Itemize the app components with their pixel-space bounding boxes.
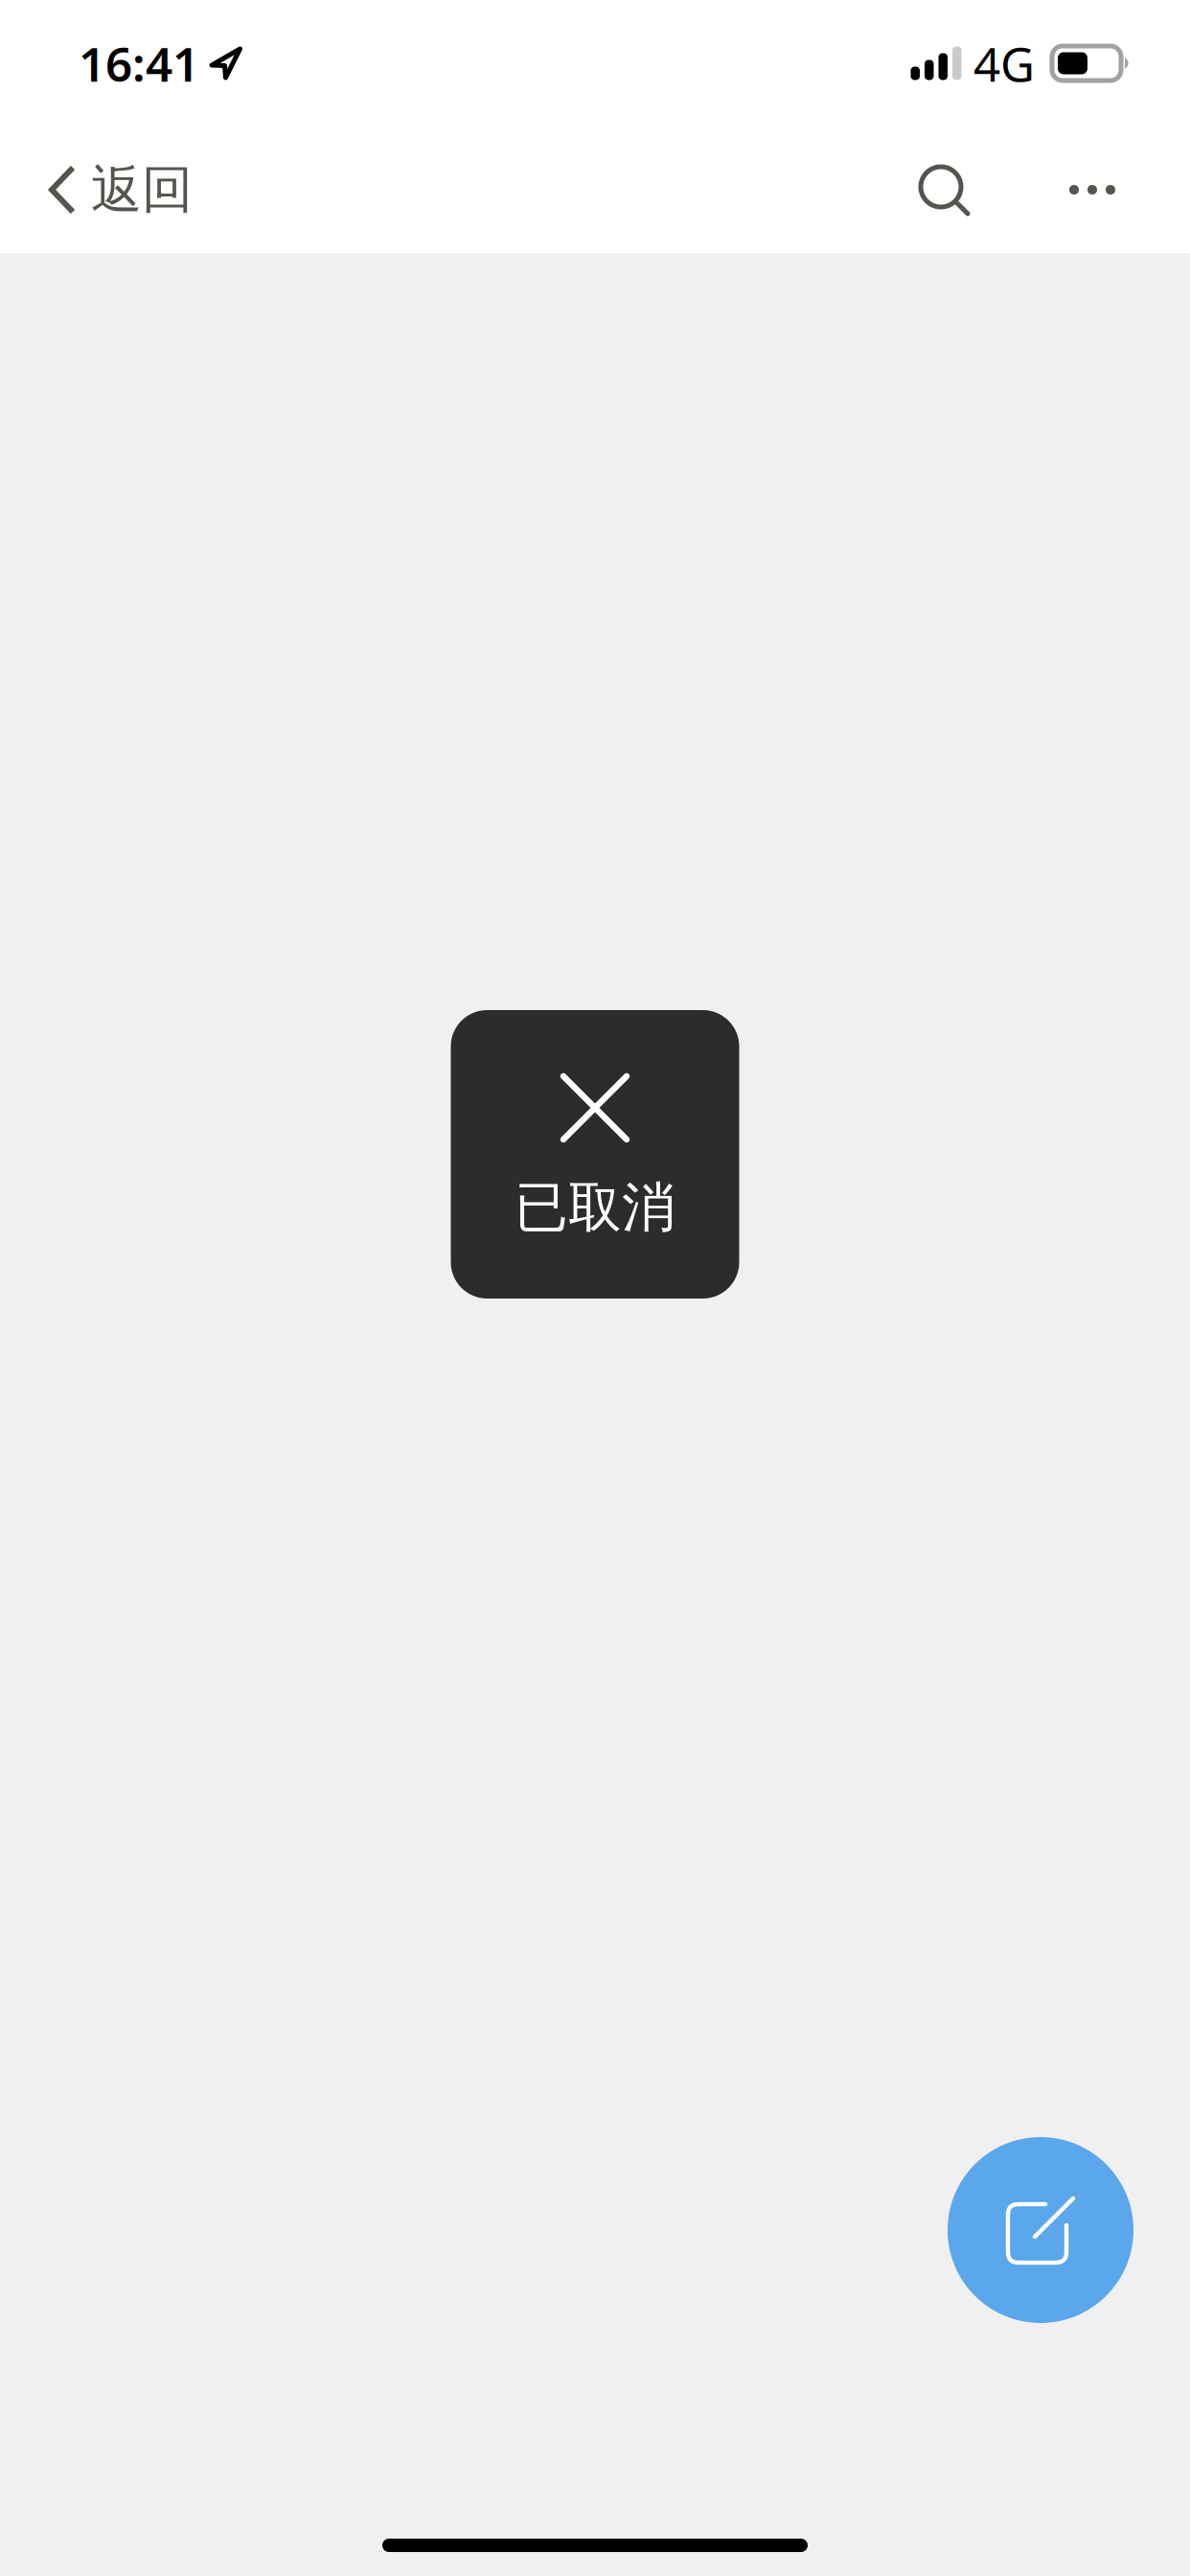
button[interactable]: Compose bbox=[948, 2137, 1133, 2323]
button[interactable]: 返回 bbox=[0, 126, 221, 253]
button[interactable]: More options bbox=[1033, 126, 1152, 253]
button[interactable]: Search bbox=[884, 126, 1003, 253]
staticText: 16:41 bbox=[79, 32, 199, 95]
staticText: 已取消 bbox=[515, 1175, 675, 1240]
staticText: 返回 bbox=[91, 158, 193, 221]
staticText: 4G bbox=[973, 32, 1035, 95]
